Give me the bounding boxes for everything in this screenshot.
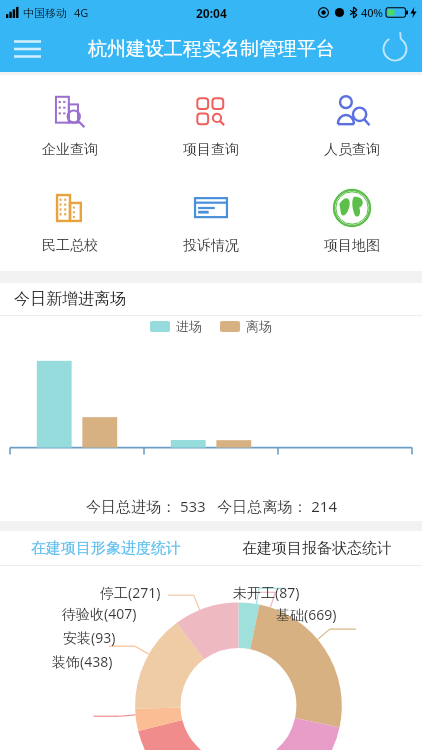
staticText: 在建项目报备状态统计 [242,539,392,558]
button[interactable]: 项目查询 [140,89,281,161]
staticText: 进场 [176,318,202,334]
staticText: 装饰(438) [52,652,113,671]
staticText: 项目查询 [183,141,239,159]
button[interactable]: Menu [6,28,48,70]
staticText: 今日新增进离场 [14,289,126,309]
staticText: 中国移动 [23,6,67,20]
staticText: 20:04 [196,5,227,21]
staticText: 在建项目形象进度统计 [31,539,181,558]
button[interactable]: 项目地图 [281,185,422,257]
staticText: 40% [361,5,383,20]
staticText: 停工(271) [100,583,161,602]
button[interactable]: 投诉情况 [140,185,281,257]
staticText: 基础(669) [276,605,337,624]
staticText: 安装(93) [63,628,116,647]
staticText: 民工总校 [42,237,98,255]
staticText: 人员查询 [324,141,380,159]
button[interactable]: 人员查询 [281,89,422,161]
staticText: 离场 [246,318,272,334]
staticText: 项目地图 [324,237,380,255]
staticText: 待验收(407) [62,604,137,623]
staticText: 企业查询 [42,141,98,159]
button[interactable]: 民工总校 [0,185,140,257]
button[interactable]: 在建项目报备状态统计 [211,531,422,565]
button[interactable]: 企业查询 [0,89,140,161]
staticText: 4G [74,5,89,20]
staticText: 杭州建设工程实名制管理平台 [88,37,335,61]
button[interactable]: Refresh [374,28,416,70]
staticText: 投诉情况 [183,237,239,255]
staticText: 未开工(87) [233,583,300,602]
staticText: 今日总进场： 533 今日总离场： 214 [86,496,337,516]
button[interactable]: 在建项目形象进度统计 [0,531,211,565]
